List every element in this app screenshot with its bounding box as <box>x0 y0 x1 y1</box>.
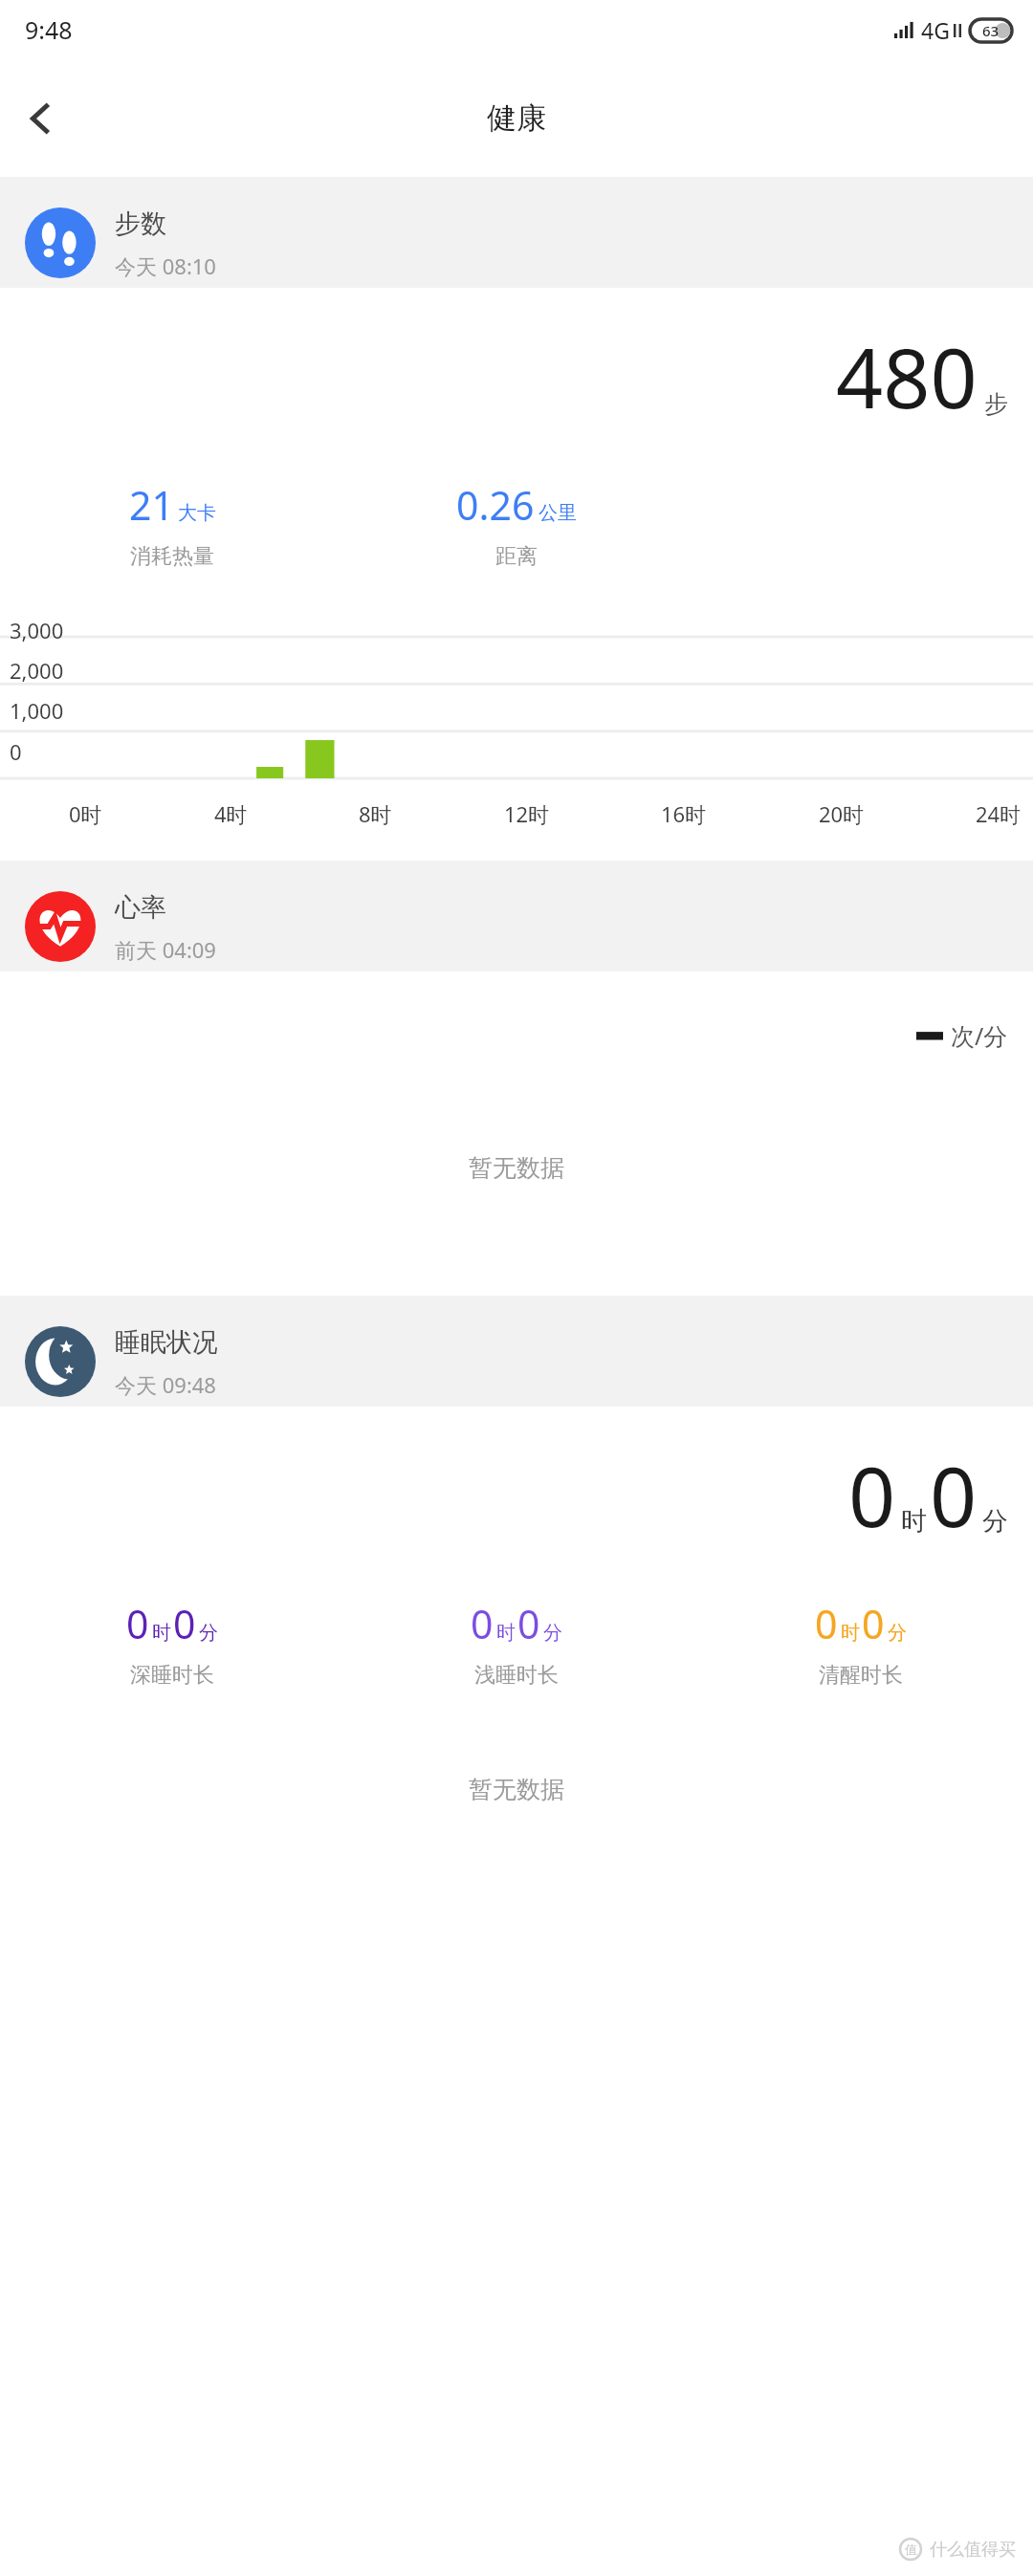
staticText: 20时 <box>819 799 865 828</box>
staticText: 前天 04:09 <box>115 935 216 964</box>
staticText: 分 <box>543 1621 562 1645</box>
staticText: 16时 <box>661 799 707 828</box>
staticText: 浅睡时长 <box>474 1662 559 1689</box>
staticText: 大卡 <box>178 501 216 525</box>
staticText: 12时 <box>504 799 550 828</box>
staticText: 时 <box>841 1621 860 1645</box>
staticText: 0 <box>848 1439 896 1551</box>
staticText: 4时 <box>214 799 248 828</box>
staticText: 什么值得买 <box>930 2539 1016 2561</box>
staticText: 24时 <box>976 799 1022 828</box>
staticText: 0 <box>471 1597 494 1650</box>
staticText: 3,000 <box>10 616 64 644</box>
staticText: 时 <box>496 1621 516 1645</box>
staticText: 睡眠状况 <box>115 1326 218 1359</box>
staticText: 时 <box>901 1505 927 1538</box>
staticText: 消耗热量 <box>130 543 214 570</box>
staticText: 今天 08:10 <box>115 251 216 280</box>
staticText: 2,000 <box>10 656 64 685</box>
staticText: 0 <box>862 1597 885 1650</box>
staticText: 心率 <box>115 891 166 924</box>
staticText: 0 <box>930 1439 978 1551</box>
button[interactable]: 步数 <box>0 177 1033 861</box>
staticText: 暂无数据 <box>0 1775 1033 1804</box>
staticText: 8时 <box>359 799 392 828</box>
staticText: 0 <box>126 1597 149 1650</box>
staticText: 公里 <box>538 501 577 525</box>
staticText: 今天 09:48 <box>115 1370 216 1399</box>
staticText: 分 <box>982 1505 1008 1538</box>
staticText: 距离 <box>495 543 538 570</box>
staticText: 分 <box>888 1621 907 1645</box>
button[interactable]: Back <box>10 86 75 151</box>
staticText: 9:48 <box>25 13 73 46</box>
staticText: 480 <box>836 320 978 432</box>
staticText: 暂无数据 <box>0 1153 1033 1183</box>
staticText: 深睡时长 <box>130 1662 214 1689</box>
button[interactable]: 心率 <box>0 861 1033 1296</box>
staticText: 健康 <box>487 99 546 137</box>
staticText: 值 <box>905 2542 917 2557</box>
staticText: 0 <box>173 1597 196 1650</box>
staticText: 21 <box>129 478 174 532</box>
staticText: 0时 <box>69 799 102 828</box>
button[interactable]: 睡眠状况 <box>0 1296 1033 1804</box>
staticText: 0 <box>10 737 22 766</box>
staticText: 1,000 <box>10 696 64 725</box>
staticText: 0.26 <box>456 478 535 532</box>
staticText: 分 <box>199 1621 218 1645</box>
staticText: 63 <box>982 21 1000 40</box>
staticText: 时 <box>152 1621 171 1645</box>
staticText: 步 <box>984 389 1008 419</box>
staticText: 次/分 <box>951 1019 1008 1052</box>
staticText: 清醒时长 <box>819 1662 903 1689</box>
staticText: 步数 <box>115 207 166 240</box>
staticText: 4G <box>921 15 950 45</box>
staticText: 0 <box>815 1597 838 1650</box>
staticText: 0 <box>517 1597 540 1650</box>
